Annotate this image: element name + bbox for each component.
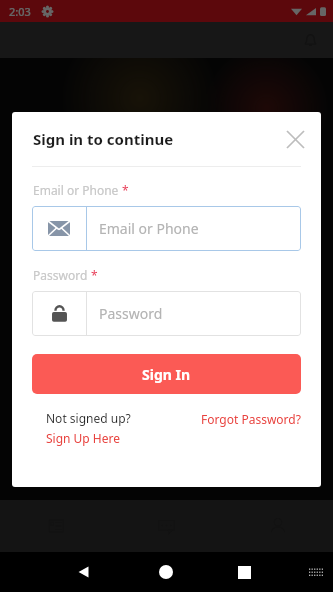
staticText: * xyxy=(122,182,129,198)
staticText: * xyxy=(91,267,98,283)
staticText: Sign In xyxy=(142,365,191,384)
staticText: Not signed up? xyxy=(46,410,131,426)
staticText: Email or Phone xyxy=(33,182,119,198)
button[interactable]: Password xyxy=(32,291,301,336)
staticText: 2:03 xyxy=(9,4,31,19)
staticText: Password xyxy=(33,267,88,283)
button[interactable]: Email or Phone xyxy=(32,206,301,251)
staticText: Password xyxy=(99,304,163,323)
button[interactable]: Sign Up Here xyxy=(46,430,121,446)
button[interactable]: Sign In xyxy=(32,354,301,394)
button[interactable]: Close xyxy=(280,124,310,154)
staticText: Sign in to continue xyxy=(33,129,174,149)
button[interactable]: Forgot Password? xyxy=(201,411,301,427)
staticText: Email or Phone xyxy=(99,219,199,238)
